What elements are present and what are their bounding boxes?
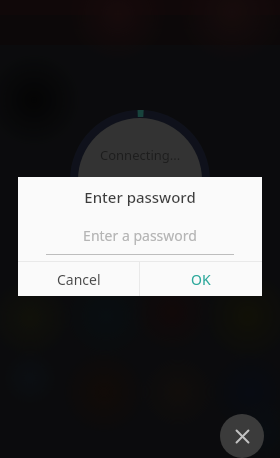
staticText: Enter password bbox=[84, 187, 196, 207]
button[interactable]: Enter a password bbox=[46, 217, 234, 254]
button[interactable]: Close bbox=[220, 414, 264, 458]
button[interactable]: OK bbox=[140, 262, 262, 296]
staticText: Connecting... bbox=[100, 146, 181, 164]
staticText: Cancel bbox=[57, 270, 101, 289]
staticText: OK bbox=[191, 270, 211, 289]
staticText: Enter a password bbox=[83, 226, 197, 245]
button[interactable]: Cancel bbox=[18, 262, 139, 296]
